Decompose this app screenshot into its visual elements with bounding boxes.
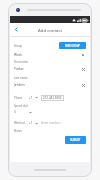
button[interactable]: NEW GROUP [59,42,86,49]
staticText: Notes [14,129,22,133]
staticText: Speed dial [14,104,28,108]
staticText: Jenkins [14,83,80,87]
staticText: Work tel. [14,121,29,125]
staticText: First name [14,60,28,64]
staticText: 3 [14,110,16,114]
staticText: 212-443-5002 [43,96,62,100]
staticText: Phone [14,96,29,100]
button[interactable]: Back [10,23,23,36]
button[interactable]: Clear group [80,52,86,58]
staticText: +1 [29,96,33,100]
button[interactable]: Clear First name [80,66,86,72]
staticText: SUBMIT [70,138,81,142]
button[interactable]: SUBMIT [65,136,86,144]
staticText: +1 [29,121,33,125]
staticText: Parker [14,67,80,71]
staticText: Last name [14,76,28,80]
staticText: Group [14,44,59,48]
staticText: Add contact [38,27,63,33]
staticText: NEW GROUP [65,44,81,47]
button[interactable]: Clear Last name [80,82,86,88]
staticText: Enter number... [41,121,62,125]
staticText: Work [14,53,80,57]
